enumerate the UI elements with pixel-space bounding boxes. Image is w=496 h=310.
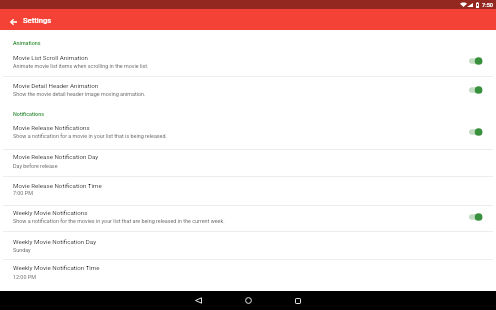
button[interactable] — [0, 205, 496, 231]
button[interactable]: Toggle setting — [464, 125, 488, 139]
button[interactable] — [0, 260, 496, 289]
staticText: Day before release — [13, 163, 58, 169]
button[interactable] — [0, 149, 496, 176]
button[interactable]: Home — [233, 291, 263, 310]
button[interactable]: Toggle setting — [464, 210, 488, 224]
staticText: Settings — [23, 16, 52, 25]
staticText: Movie Release Notification Day — [13, 153, 99, 160]
staticText: Show a notification for a movie in your … — [13, 133, 167, 139]
staticText: 7:50 — [482, 2, 494, 9]
staticText: Show the movie detail header image movin… — [13, 91, 146, 97]
staticText: Movie List Scroll Animation — [13, 54, 89, 61]
staticText: Show a notification for the movies in yo… — [13, 218, 225, 224]
staticText: Weekly Movie Notification Time — [13, 264, 100, 271]
button[interactable]: Back — [183, 291, 213, 310]
staticText: 12:00 PM — [13, 274, 36, 280]
staticText: Notifications — [13, 111, 44, 117]
button[interactable]: Recent apps — [283, 291, 313, 310]
button[interactable] — [0, 231, 496, 260]
staticText: Movie Detail Header Animation — [13, 82, 99, 89]
button[interactable] — [0, 48, 496, 77]
staticText: Movie Release Notifications — [13, 124, 90, 131]
button[interactable] — [0, 77, 496, 105]
staticText: Weekly Movie Notifications — [13, 209, 88, 216]
staticText: Movie Release Notification Time — [13, 182, 102, 189]
button[interactable] — [0, 176, 496, 205]
button[interactable]: Toggle setting — [464, 54, 488, 68]
button[interactable]: Back — [5, 14, 21, 30]
staticText: Animations — [13, 40, 41, 46]
staticText: Animate movie list items when scrolling … — [13, 63, 149, 69]
staticText: 7:00 PM — [13, 190, 33, 196]
staticText: Weekly Movie Notification Day — [13, 238, 97, 245]
button[interactable] — [0, 120, 496, 149]
staticText: Sunday — [13, 247, 31, 253]
button[interactable]: Toggle setting — [464, 83, 488, 97]
